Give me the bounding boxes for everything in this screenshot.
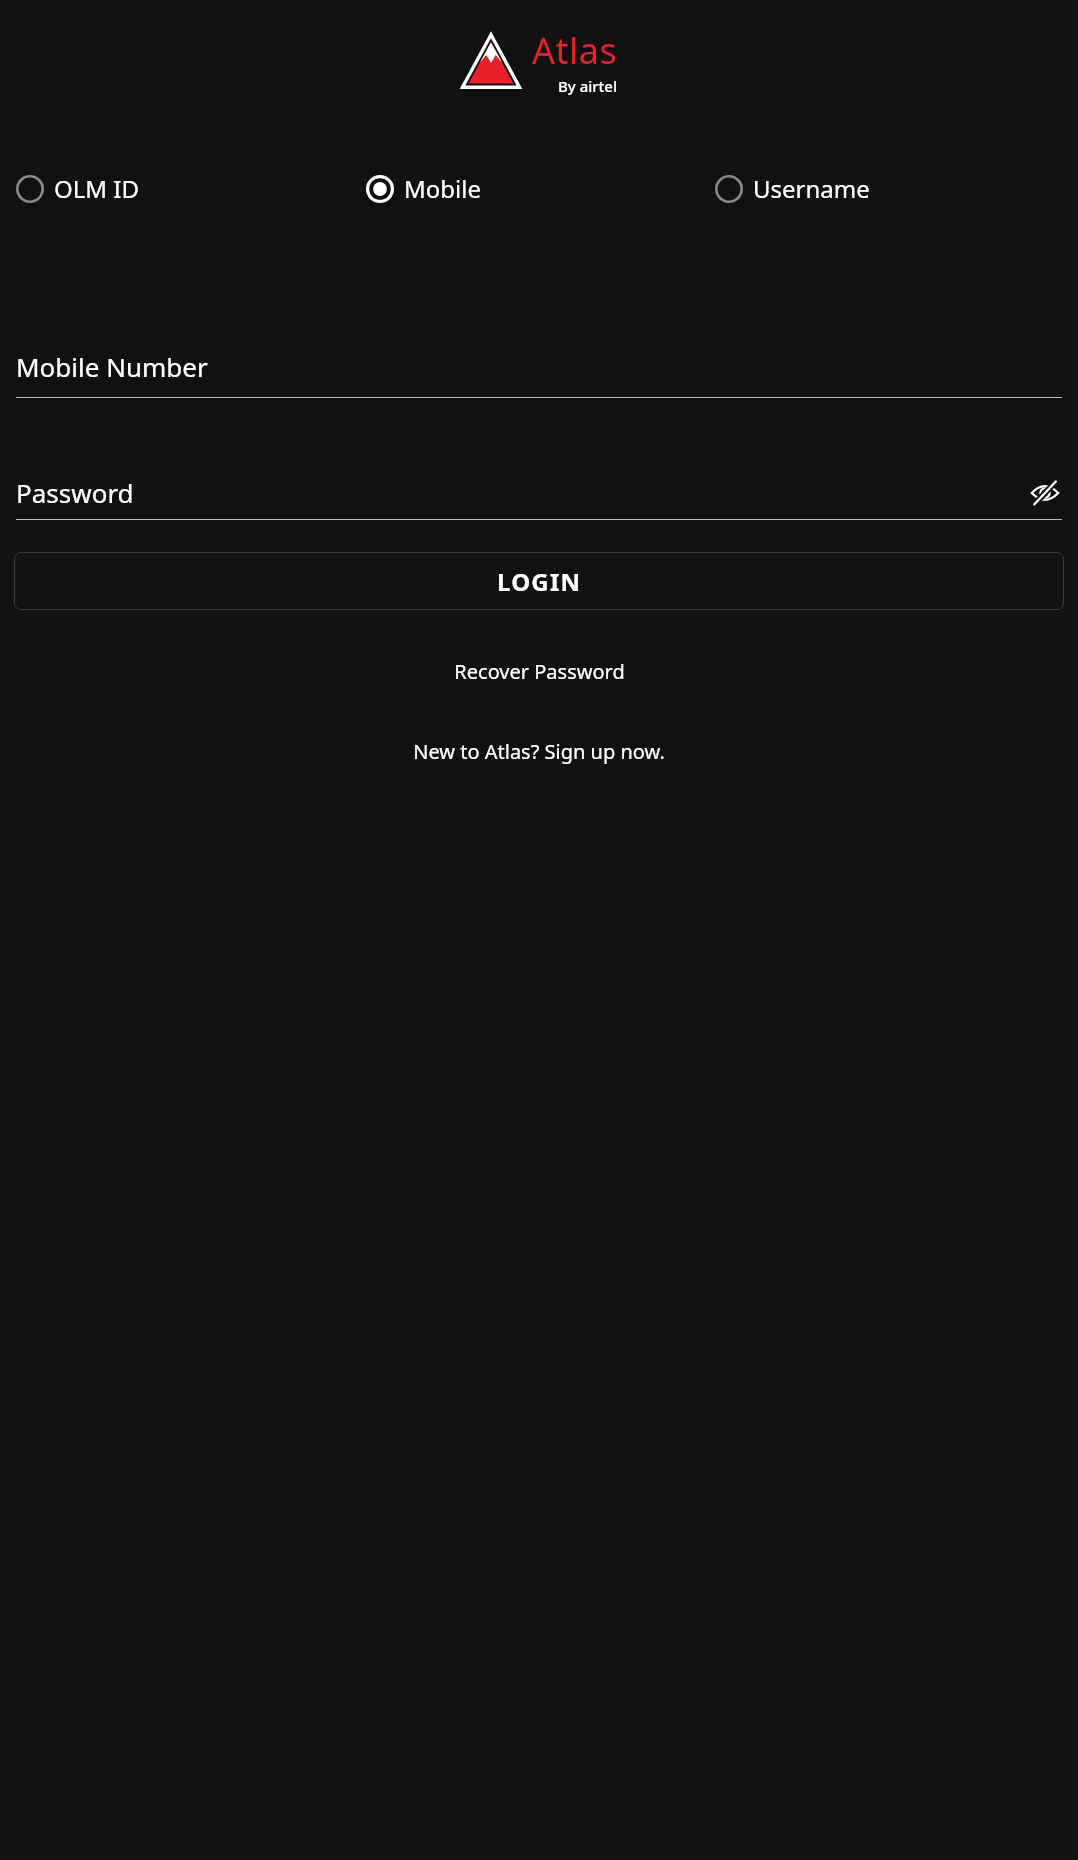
button[interactable]: Recover Password: [444, 654, 635, 689]
staticText: OLM ID: [54, 172, 139, 205]
staticText: Mobile Number: [16, 349, 208, 384]
button[interactable]: New to Atlas? Sign up now.: [403, 734, 675, 769]
staticText: Atlas: [532, 26, 618, 75]
button[interactable]: Username: [714, 166, 1063, 211]
button[interactable]: OLM ID: [15, 166, 365, 211]
button[interactable]: Mobile: [365, 166, 714, 211]
staticText: Recover Password: [454, 658, 625, 685]
staticText: LOGIN: [497, 565, 582, 598]
button[interactable]: Show password: [1028, 476, 1062, 510]
staticText: By airtel: [558, 76, 618, 96]
staticText: Username: [753, 172, 870, 205]
staticText: New to Atlas? Sign up now.: [413, 738, 665, 765]
button[interactable]: LOGIN: [14, 552, 1064, 610]
staticText: Password: [16, 475, 1028, 510]
staticText: Mobile: [404, 172, 481, 205]
